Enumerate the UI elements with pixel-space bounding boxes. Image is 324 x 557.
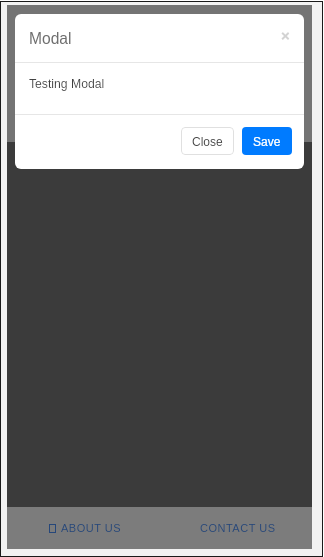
- button[interactable]: CONTACT US: [196, 518, 280, 538]
- staticText: ×: [281, 27, 290, 44]
- staticText: Modal: [29, 30, 72, 47]
- staticText: Testing Modal: [29, 77, 105, 91]
- staticText: CONTACT US: [200, 522, 276, 534]
- staticText: Save: [253, 135, 281, 148]
- staticText: Close: [192, 135, 223, 148]
- button[interactable]: Save: [242, 127, 292, 155]
- button[interactable]: Dismiss dialog: [7, 5, 312, 142]
- button[interactable]: ABOUT US: [45, 518, 126, 538]
- button[interactable]: Dismiss dialog: [7, 142, 312, 507]
- button[interactable]: Close: [274, 24, 296, 46]
- button[interactable]: Close: [181, 127, 234, 155]
- staticText: ABOUT US: [61, 522, 122, 534]
